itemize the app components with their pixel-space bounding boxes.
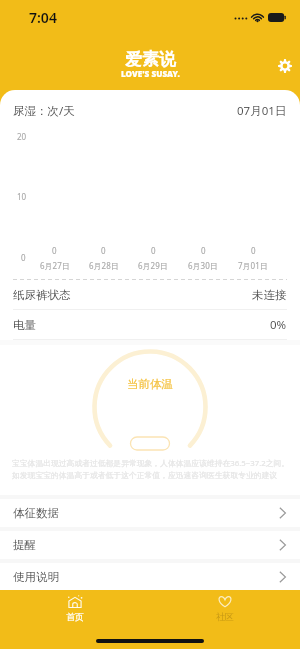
staticText: 尿湿：次/天 <box>13 103 75 119</box>
button[interactable]: Settings <box>268 49 300 83</box>
staticText: 宝宝体温出现过高或者过低都是异常现象，人体体温应该维持在36.5~37.2之间。… <box>12 458 290 480</box>
staticText: 0 <box>101 245 106 256</box>
staticText: 0 <box>251 245 256 256</box>
staticText: 7月01日 <box>238 260 268 271</box>
staticText: 首页 <box>66 611 84 622</box>
button[interactable]: 纸尿裤状态 <box>0 280 300 309</box>
staticText: 0% <box>270 317 287 333</box>
staticText: 6月28日 <box>89 260 119 271</box>
staticText: 电量 <box>13 318 36 332</box>
button[interactable]: 使用说明 <box>0 563 300 590</box>
button[interactable]: 首页 <box>0 595 150 622</box>
staticText: 未连接 <box>252 288 287 302</box>
button[interactable]: 电量 <box>0 310 300 339</box>
staticText: 纸尿裤状态 <box>13 288 71 302</box>
button[interactable]: 体征数据 <box>0 499 300 527</box>
staticText: 0 <box>52 245 57 256</box>
staticText: 0 <box>201 245 206 256</box>
staticText: 0 <box>21 252 26 263</box>
staticText: 社区 <box>216 611 234 622</box>
button[interactable]: 提醒 <box>0 531 300 559</box>
staticText: 6月29日 <box>138 260 168 271</box>
staticText: 07月01日 <box>237 103 287 119</box>
staticText: 当前体温 <box>127 377 173 391</box>
staticText: 爱素说 <box>125 49 176 70</box>
staticText: 提醒 <box>13 538 36 552</box>
staticText: LOVE'S SUSAY. <box>121 68 180 79</box>
staticText: 使用说明 <box>13 570 59 584</box>
staticText: 10 <box>17 191 27 202</box>
staticText: 20 <box>17 131 27 142</box>
staticText: 6月27日 <box>40 260 70 271</box>
staticText: 7:04 <box>29 8 57 27</box>
staticText: 体征数据 <box>13 506 59 520</box>
button[interactable]: 社区 <box>150 595 300 622</box>
staticText: 6月30日 <box>188 260 218 271</box>
staticText: 0 <box>151 245 156 256</box>
